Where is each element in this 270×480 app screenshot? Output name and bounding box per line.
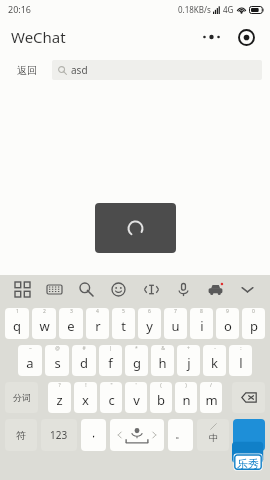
button[interactable]: 6 <box>138 308 161 339</box>
button[interactable]: 7 <box>164 308 187 339</box>
button[interactable]: ! <box>74 382 97 413</box>
staticText: 0 <box>252 308 255 315</box>
button[interactable]: Enter <box>233 419 265 451</box>
staticText: 20:16 <box>8 3 32 15</box>
button[interactable]: 中 <box>197 419 229 451</box>
button[interactable]: Voice input <box>171 277 196 302</box>
button[interactable]: 符 <box>5 419 37 451</box>
button[interactable]: : <box>229 345 252 376</box>
staticText: 分词 <box>13 392 31 403</box>
staticText: 2 <box>43 308 46 315</box>
button[interactable]: Panel <box>10 277 35 302</box>
staticText: / <box>210 382 212 389</box>
button[interactable]: 5 <box>112 308 135 339</box>
button[interactable]: / <box>200 382 222 413</box>
button[interactable]: 9 <box>216 308 239 339</box>
staticText: h <box>158 354 167 372</box>
staticText: 5 <box>122 308 125 315</box>
staticText: 4G <box>223 4 234 15</box>
button[interactable]: More options <box>196 22 226 52</box>
staticText: o <box>224 317 232 335</box>
button[interactable]: 8 <box>190 308 213 339</box>
staticText: m <box>205 391 218 409</box>
staticText: ~ <box>29 345 32 352</box>
staticText: asd <box>71 63 88 77</box>
button[interactable]: 3 <box>59 308 83 339</box>
staticText: x <box>82 391 89 409</box>
button[interactable]: ' <box>125 382 147 413</box>
staticText: @ <box>55 345 60 352</box>
staticText: ! <box>85 382 87 389</box>
staticText: ' <box>135 382 137 389</box>
staticText: c <box>108 391 115 409</box>
button[interactable]: 返回 <box>8 55 46 85</box>
staticText: 8 <box>200 308 203 315</box>
staticText: 。 <box>175 427 186 441</box>
button[interactable]: Space <box>110 419 164 451</box>
button[interactable]: * <box>125 345 148 376</box>
staticText: v <box>133 391 140 409</box>
button[interactable]: Scan <box>231 22 261 52</box>
button[interactable]: " <box>100 382 122 413</box>
staticText: n <box>182 391 191 409</box>
staticText: 3 <box>70 308 73 315</box>
button[interactable]: + <box>177 345 200 376</box>
button[interactable]: Car mode <box>203 277 228 302</box>
staticText: ? <box>58 382 61 389</box>
staticText: " <box>110 382 113 389</box>
button[interactable]: @ <box>45 345 69 376</box>
staticText: WeChat <box>11 27 66 47</box>
staticText: 中 <box>209 432 218 443</box>
staticText: 7 <box>174 308 177 315</box>
button[interactable]: ( <box>150 382 172 413</box>
staticText: | <box>109 345 112 352</box>
staticText: u <box>171 317 180 335</box>
button[interactable]: Search <box>74 277 99 302</box>
button[interactable]: Delete <box>232 382 265 413</box>
button[interactable]: ? <box>48 382 71 413</box>
staticText: 返回 <box>17 64 37 77</box>
staticText: t <box>121 317 126 335</box>
staticText: 6 <box>148 308 151 315</box>
staticText: 0.18KB/s <box>178 4 211 15</box>
staticText: 1 <box>16 308 19 315</box>
staticText: r <box>95 317 101 335</box>
button[interactable]: | <box>99 345 122 376</box>
button[interactable]: 1 <box>5 308 29 339</box>
staticText: & <box>161 345 165 352</box>
button[interactable]: ， <box>81 419 106 451</box>
staticText: k <box>211 354 218 372</box>
staticText: 4 <box>96 308 99 315</box>
button[interactable]: Emoji <box>106 277 131 302</box>
button[interactable]: ~ <box>18 345 42 376</box>
staticText: d <box>80 354 88 372</box>
staticText: a <box>26 354 34 372</box>
staticText: g <box>133 354 141 372</box>
staticText: w <box>39 317 50 335</box>
staticText: - <box>214 345 216 352</box>
button[interactable]: 。 <box>168 419 193 451</box>
staticText: b <box>157 391 165 409</box>
button[interactable]: 2 <box>32 308 56 339</box>
staticText: 9 <box>226 308 229 315</box>
button[interactable]: Keyboard layout <box>42 277 67 302</box>
staticText: i <box>200 317 204 335</box>
button[interactable]: 0 <box>242 308 265 339</box>
staticText: q <box>13 317 21 335</box>
staticText: * <box>135 345 138 352</box>
staticText: l <box>239 354 243 372</box>
staticText: 123 <box>50 428 68 442</box>
button[interactable]: Hide keyboard <box>235 277 260 302</box>
button[interactable]: - <box>203 345 226 376</box>
button[interactable]: 4 <box>86 308 109 339</box>
button[interactable]: & <box>151 345 174 376</box>
button[interactable]: Clipboard <box>139 277 164 302</box>
button[interactable]: 分词 <box>5 382 38 413</box>
button[interactable]: ) <box>175 382 197 413</box>
staticText: p <box>250 317 258 335</box>
button[interactable]: asd <box>52 60 262 80</box>
button[interactable]: # <box>72 345 96 376</box>
staticText: # <box>82 345 86 352</box>
button[interactable]: 123 <box>41 419 77 451</box>
staticText: f <box>108 354 113 372</box>
